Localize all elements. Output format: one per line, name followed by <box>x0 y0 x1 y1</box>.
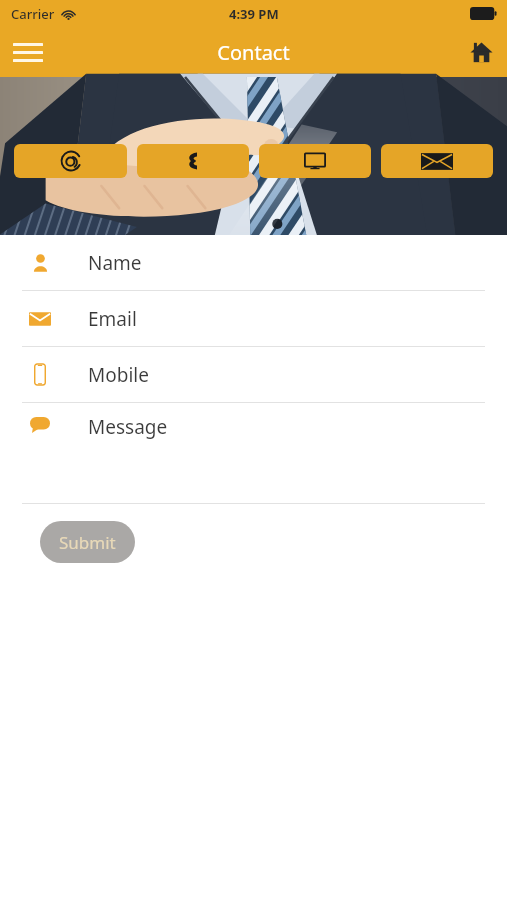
button[interactable]: Message <box>0 403 507 503</box>
button[interactable]: Name <box>0 235 507 290</box>
button[interactable]: Send mail <box>381 144 493 178</box>
staticText: Name <box>88 250 142 276</box>
button[interactable]: Website <box>259 144 371 178</box>
button[interactable]: Call <box>137 144 249 178</box>
staticText: Mobile <box>88 362 149 388</box>
button[interactable]: Home <box>455 27 507 77</box>
staticText: Contact <box>217 39 290 66</box>
button[interactable]: Mobile <box>0 347 507 402</box>
staticText: Email <box>88 306 137 332</box>
button[interactable]: Email address <box>14 144 127 178</box>
staticText: 4:39 PM <box>229 5 279 23</box>
button[interactable]: Email <box>0 291 507 346</box>
button[interactable]: Menu <box>0 27 56 77</box>
staticText: Message <box>88 414 168 440</box>
staticText: Submit <box>59 531 116 554</box>
staticText: Carrier <box>11 5 55 23</box>
button[interactable]: Submit <box>40 521 135 563</box>
